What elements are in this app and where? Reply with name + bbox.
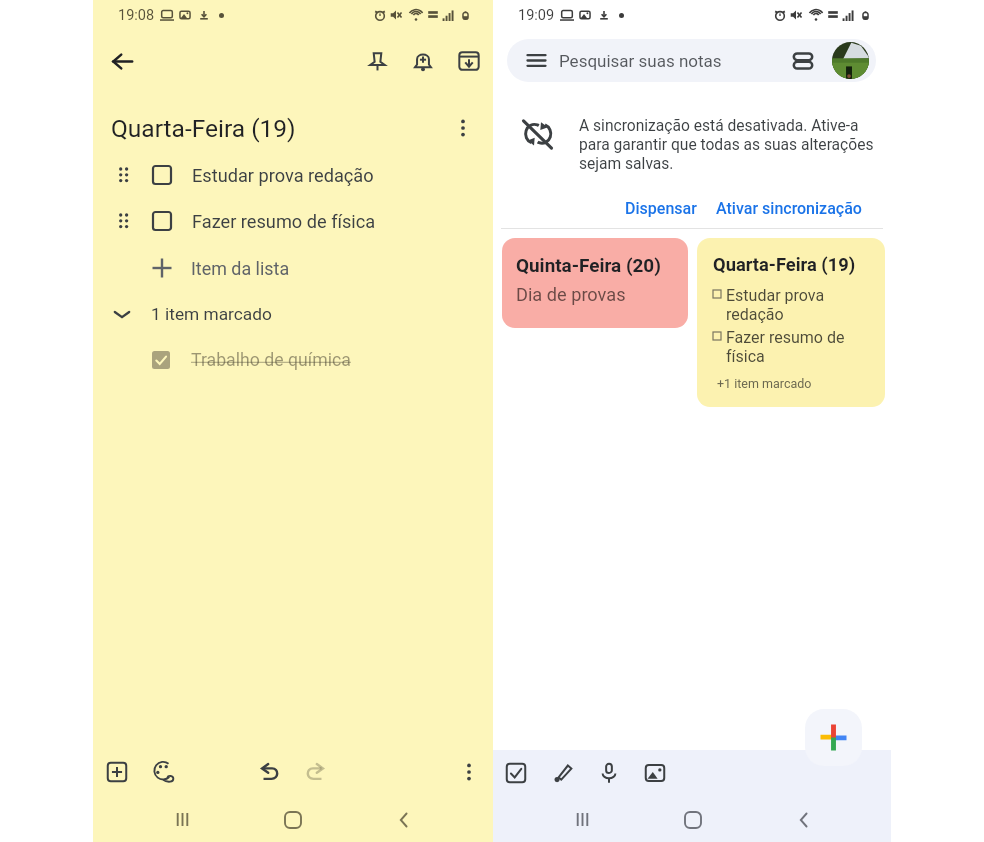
button[interactable]: Add bbox=[97, 752, 137, 792]
staticText: Estudar prova redação bbox=[726, 286, 825, 324]
staticText: Fazer resumo de física bbox=[192, 211, 376, 232]
button[interactable]: Create new note bbox=[805, 709, 862, 766]
staticText: Pesquisar suas notas bbox=[559, 51, 722, 71]
staticText: Quinta-Feira (20) bbox=[516, 254, 661, 276]
button[interactable]: More options bbox=[443, 108, 483, 148]
button[interactable]: Home bbox=[270, 797, 315, 842]
button[interactable]: 1 item marcado bbox=[93, 291, 493, 337]
button[interactable]: Undo bbox=[250, 752, 290, 792]
button[interactable]: Toggle view bbox=[785, 43, 821, 79]
button[interactable]: New drawing bbox=[543, 753, 583, 793]
staticText: 19:08 bbox=[118, 7, 155, 24]
staticText: Trabalho de química bbox=[191, 350, 351, 371]
button[interactable]: Quinta-Feira (20) bbox=[502, 238, 688, 328]
button[interactable]: Estudar prova redação bbox=[93, 152, 493, 198]
button[interactable]: New recording bbox=[589, 753, 629, 793]
button[interactable]: Ativar sincronização bbox=[708, 191, 870, 226]
button[interactable]: Redo bbox=[295, 752, 335, 792]
button[interactable]: Home bbox=[670, 797, 715, 842]
button[interactable]: Fazer resumo de física bbox=[93, 198, 493, 244]
button[interactable]: Recents bbox=[160, 797, 205, 842]
button[interactable]: New list bbox=[496, 753, 536, 793]
staticText: Dia de provas bbox=[516, 284, 626, 305]
staticText: +1 item marcado bbox=[717, 376, 812, 391]
staticText: Estudar prova redação bbox=[192, 165, 374, 186]
button[interactable]: Back bbox=[781, 797, 826, 842]
button[interactable]: Pin bbox=[357, 41, 397, 81]
button[interactable]: Account bbox=[832, 42, 869, 79]
button[interactable]: Quarta-Feira (19) bbox=[697, 238, 885, 407]
button[interactable]: Pesquisar suas notas bbox=[507, 39, 876, 82]
staticText: Fazer resumo de física bbox=[726, 328, 845, 366]
button[interactable]: Back bbox=[381, 797, 426, 842]
button[interactable]: New image bbox=[635, 753, 675, 793]
staticText: 1 item marcado bbox=[151, 304, 272, 324]
button[interactable]: Recents bbox=[560, 797, 605, 842]
staticText: Item da lista bbox=[191, 258, 290, 279]
button[interactable]: More bbox=[449, 752, 489, 792]
button[interactable]: Trabalho de química bbox=[93, 337, 493, 383]
staticText: Quarta-Feira (19) bbox=[713, 254, 856, 275]
staticText: Quarta-Feira (19) bbox=[111, 114, 296, 143]
button[interactable]: Reminder bbox=[403, 41, 443, 81]
button[interactable]: Colour bbox=[144, 752, 184, 792]
button[interactable]: Archive bbox=[449, 41, 489, 81]
button[interactable]: Back bbox=[102, 41, 142, 81]
button[interactable]: Dispensar bbox=[617, 191, 705, 226]
staticText: 19:09 bbox=[518, 7, 555, 24]
staticText: A sincronização está desativada. Ative-a… bbox=[579, 117, 909, 173]
button[interactable]: Item da lista bbox=[93, 245, 493, 291]
